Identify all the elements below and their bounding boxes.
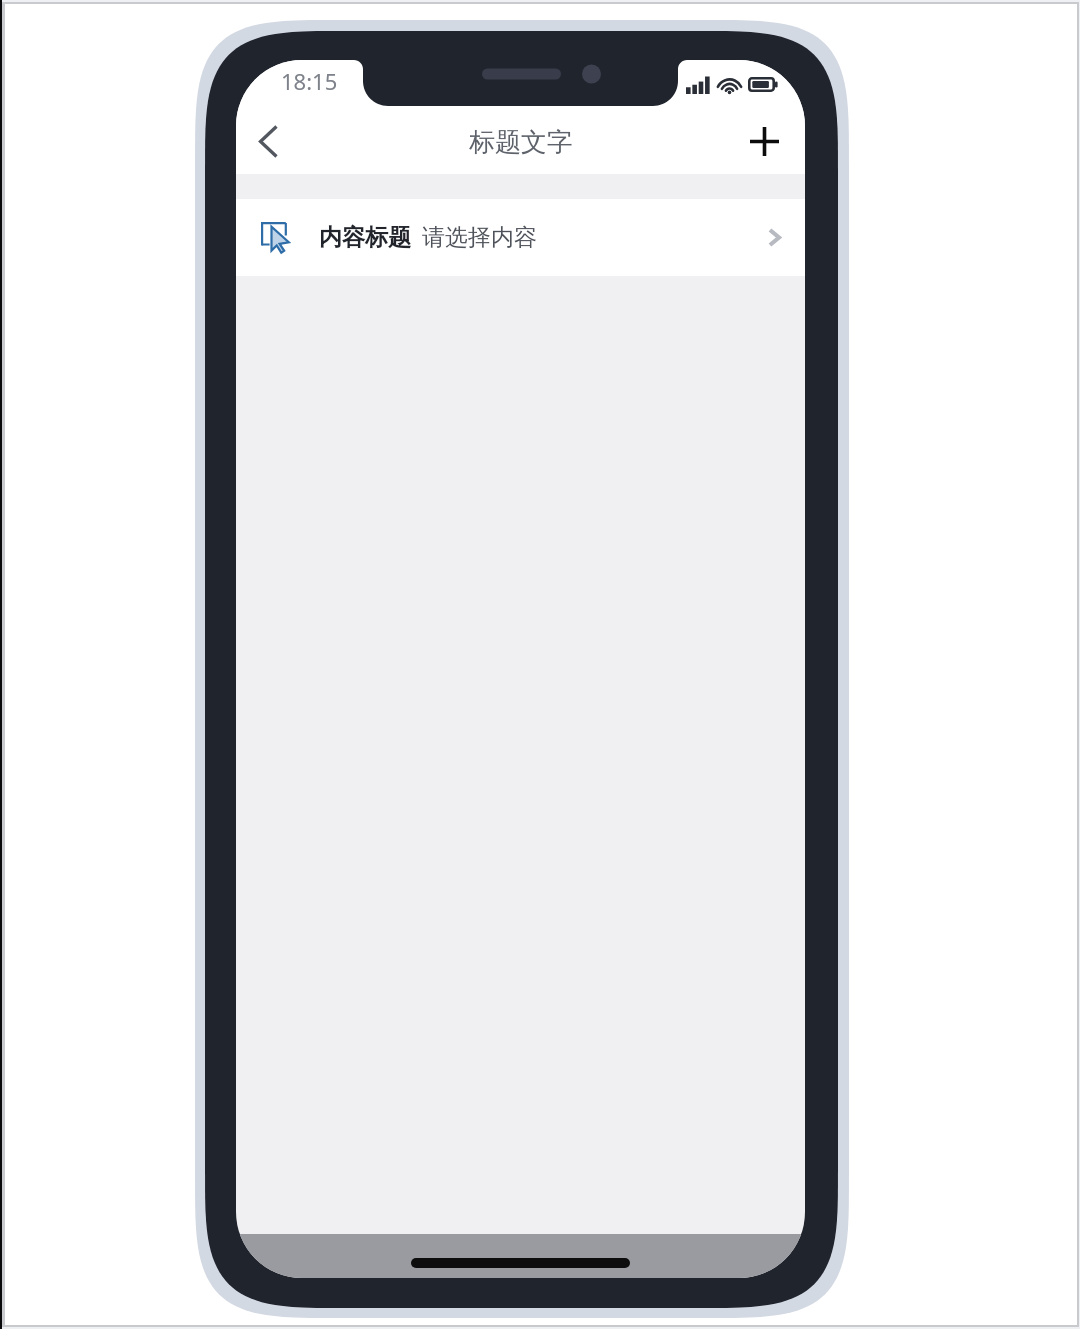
- staticText: 请选择内容: [422, 223, 537, 252]
- staticText: 内容标题: [319, 223, 411, 252]
- staticText: 标题文字: [469, 126, 573, 159]
- staticText: 18:15: [281, 66, 338, 96]
- button[interactable]: Add: [735, 105, 805, 174]
- button[interactable]: Back: [236, 105, 302, 174]
- button[interactable]: 内容标题: [236, 199, 805, 276]
